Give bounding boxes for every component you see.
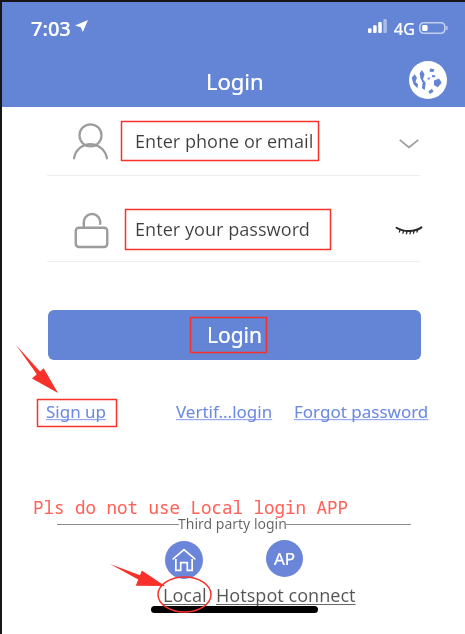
button[interactable]: Vertif...login	[176, 400, 273, 423]
button[interactable]: Local	[163, 583, 207, 608]
button[interactable]: Forgot password	[294, 400, 429, 423]
staticText: Sign up	[46, 400, 107, 423]
button[interactable]: Enter phone or email	[0, 112, 465, 170]
staticText: Login	[206, 66, 264, 96]
button[interactable]: Hotspot connect	[216, 583, 356, 608]
staticText: Login	[207, 321, 263, 350]
staticText: Local	[163, 583, 207, 608]
staticText: 4G	[394, 18, 415, 40]
button[interactable]: AP	[266, 540, 303, 577]
staticText: Third party login	[178, 514, 287, 533]
staticText: 7:03	[31, 15, 71, 42]
button[interactable]: Change language	[407, 59, 449, 101]
staticText: Vertif...login	[176, 400, 273, 423]
button[interactable]: Sign up	[46, 400, 107, 423]
staticText: Forgot password	[294, 400, 429, 423]
staticText: Enter phone or email	[135, 129, 314, 154]
button[interactable]: Choose saved account	[392, 126, 426, 160]
staticText: AP	[274, 547, 296, 570]
button[interactable]: Local login	[165, 541, 203, 579]
button[interactable]: Enter your password	[0, 200, 465, 258]
staticText: Enter your password	[135, 217, 310, 242]
button[interactable]: Show password	[391, 211, 427, 247]
staticText: Pls do not use Local login APP	[33, 495, 348, 519]
staticText: Hotspot connect	[216, 583, 356, 608]
button[interactable]: Login	[48, 310, 421, 360]
